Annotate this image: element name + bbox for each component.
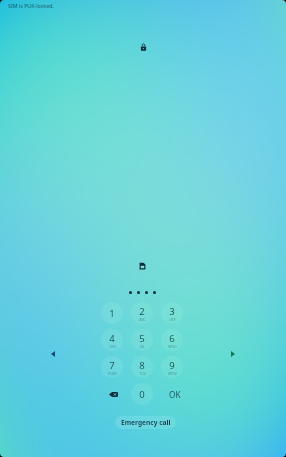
- staticText: 3: [169, 305, 175, 318]
- staticText: 4: [109, 332, 115, 345]
- button[interactable]: 3: [161, 302, 183, 324]
- staticText: JKL: [140, 344, 145, 349]
- button[interactable]: Previous: [45, 346, 61, 362]
- button[interactable]: 0: [131, 383, 153, 405]
- staticText: OK: [169, 389, 181, 400]
- staticText: PQRS: [108, 371, 117, 376]
- button[interactable]: OK: [164, 383, 186, 405]
- button[interactable]: 9: [161, 356, 183, 378]
- button[interactable]: 7: [101, 356, 123, 378]
- staticText: 7: [109, 359, 115, 372]
- button[interactable]: 8: [131, 356, 153, 378]
- staticText: ABC: [139, 317, 146, 322]
- button[interactable]: 5: [131, 329, 153, 351]
- staticText: WXYZ: [168, 371, 177, 376]
- staticText: DEF: [169, 317, 176, 322]
- button[interactable]: Emergency call: [115, 416, 176, 429]
- button[interactable]: 6: [161, 329, 183, 351]
- staticText: 2: [139, 305, 145, 318]
- button[interactable]: 2: [131, 302, 153, 324]
- button[interactable]: 4: [101, 329, 123, 351]
- button[interactable]: 1: [101, 302, 123, 324]
- staticText: 6: [169, 332, 175, 345]
- button[interactable]: Next: [225, 346, 241, 362]
- button[interactable]: Delete: [101, 383, 123, 405]
- staticText: 8: [139, 359, 145, 372]
- staticText: 0: [139, 388, 145, 401]
- staticText: GHI: [109, 344, 116, 349]
- staticText: SIM is PUK-locked.: [8, 2, 54, 9]
- staticText: 5: [139, 332, 145, 345]
- staticText: 9: [169, 359, 175, 372]
- staticText: Emergency call: [121, 418, 171, 427]
- staticText: TUV: [139, 371, 146, 376]
- staticText: 1: [109, 307, 115, 320]
- staticText: MNO: [168, 344, 177, 349]
